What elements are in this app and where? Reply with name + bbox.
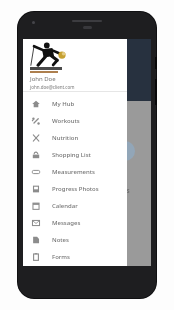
button[interactable]: Shopping List [23,146,127,163]
button[interactable]: Workouts [23,112,127,129]
staticText: Shopping List [52,151,91,159]
button[interactable]: Forms [23,248,127,265]
staticText: Nutrition [52,134,79,142]
button[interactable]: Calendar [23,197,127,214]
button[interactable]: Progress Photos [23,180,127,197]
button[interactable]: Messages [23,214,127,231]
button[interactable]: Account: John Doe [23,39,127,91]
staticText: Progress Photos [52,185,99,193]
staticText: John Doe [30,75,56,83]
staticText: Workouts [52,117,80,125]
staticText: john.doe@client.com [30,84,75,90]
staticText: Forms [52,253,70,261]
staticText: Measurements [52,168,96,176]
staticText: ENTS [117,188,130,195]
staticText: Notes [52,236,69,244]
staticText: Messages [52,219,81,227]
button[interactable]: Measurements [23,163,127,180]
staticText: Calendar [52,202,78,210]
staticText: My Hub [52,100,75,108]
button[interactable]: My Hub [23,95,127,112]
button[interactable]: Nutrition [23,129,127,146]
button[interactable]: Notes [23,231,127,248]
